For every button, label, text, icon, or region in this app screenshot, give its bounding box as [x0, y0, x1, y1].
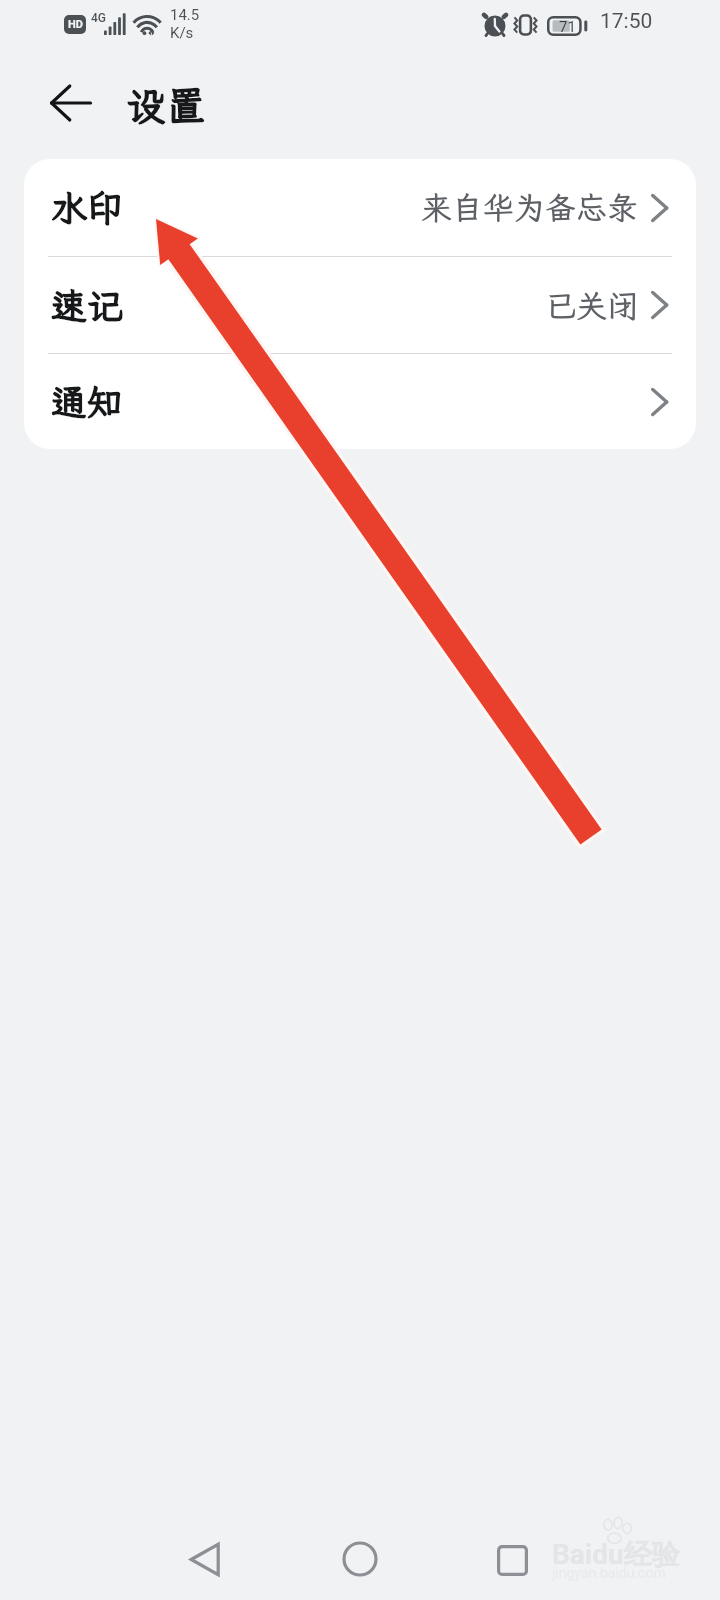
- button[interactable]: 速记: [24, 257, 696, 353]
- staticText: jingyan.baidu.com: [552, 1565, 666, 1581]
- staticText: HD: [68, 18, 83, 31]
- staticText: 17:50: [600, 9, 653, 34]
- staticText: Baidu经验: [552, 1537, 680, 1572]
- button[interactable]: Back: [42, 73, 102, 133]
- staticText: 14.5: [170, 6, 200, 24]
- staticText: 设置: [126, 79, 206, 132]
- button[interactable]: Home: [328, 1527, 392, 1591]
- staticText: 通知: [51, 378, 124, 425]
- staticText: K/s: [170, 24, 194, 42]
- button[interactable]: Back: [173, 1527, 237, 1591]
- button[interactable]: Recents: [480, 1528, 544, 1592]
- staticText: 速记: [51, 282, 124, 329]
- staticText: 71: [559, 18, 576, 36]
- staticText: 已关闭: [545, 285, 638, 326]
- staticText: 来自华为备忘录: [421, 187, 638, 228]
- button[interactable]: 水印: [24, 159, 696, 256]
- staticText: 水印: [51, 184, 124, 231]
- button[interactable]: 通知: [24, 354, 696, 449]
- staticText: 4G: [91, 11, 106, 25]
